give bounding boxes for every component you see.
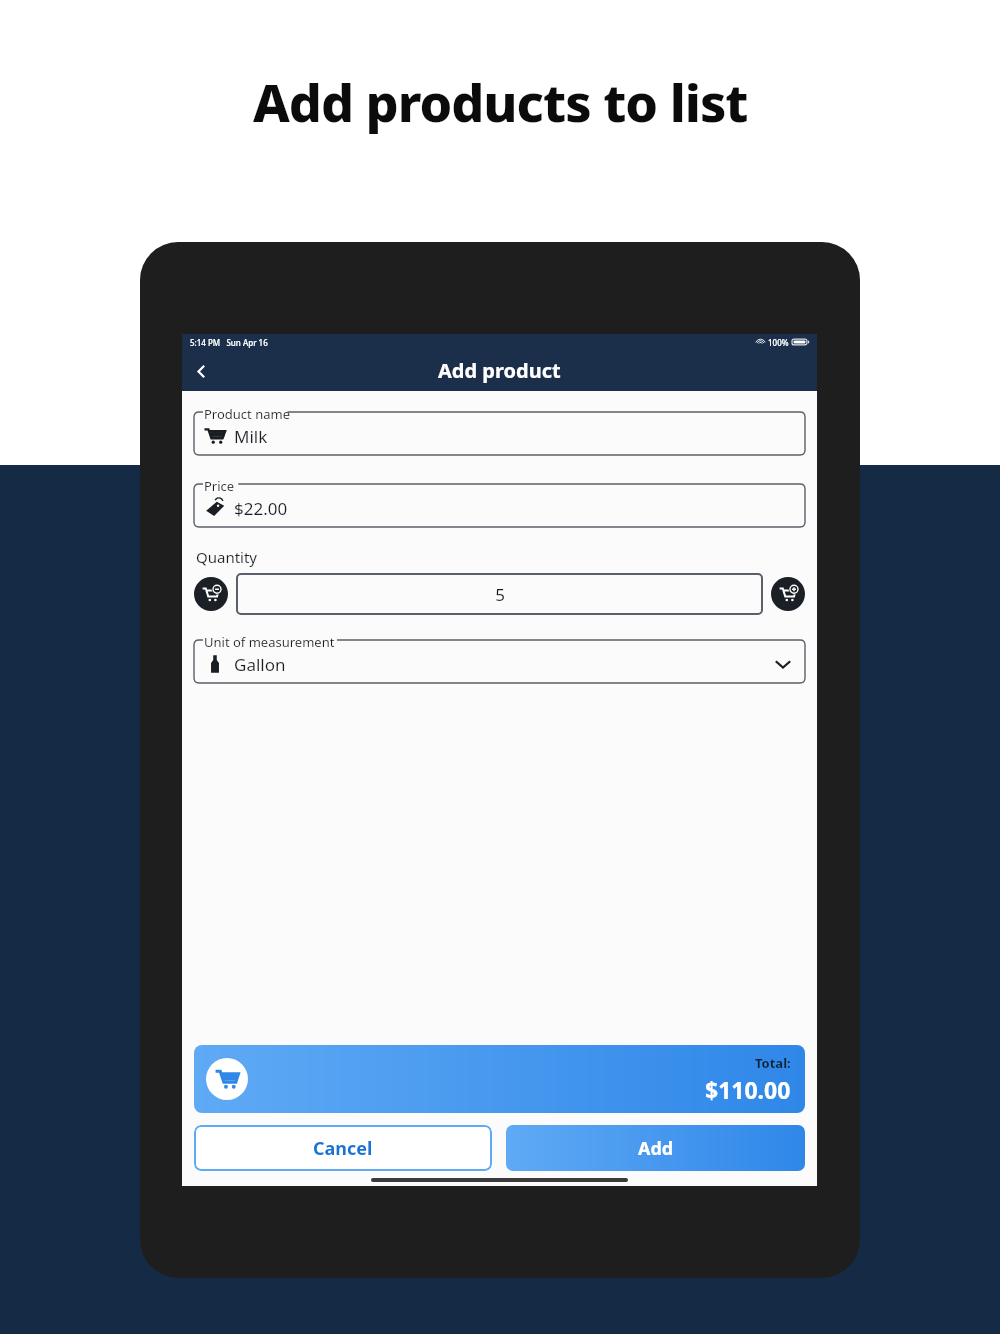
button[interactable]: Increase quantity (771, 577, 805, 611)
button[interactable]: Unit of measurement (194, 633, 805, 683)
staticText: $110.00 (705, 1074, 791, 1105)
button[interactable]: Add (506, 1125, 805, 1171)
staticText: 5 (495, 583, 505, 606)
staticText: Cancel (313, 1136, 373, 1161)
button[interactable]: Back (182, 352, 220, 390)
staticText: Unit of measurement (204, 633, 335, 651)
staticText: Add products to list (253, 66, 748, 137)
staticText: Add (638, 1136, 674, 1161)
staticText: Quantity (196, 547, 258, 567)
button[interactable]: Cancel (194, 1125, 492, 1171)
staticText: Total: (755, 1054, 791, 1072)
staticText: Add product (438, 357, 561, 384)
staticText: 5:14 PM Sun Apr 16 (190, 337, 268, 348)
button[interactable]: Total: (194, 1045, 805, 1113)
button[interactable]: Decrease quantity (194, 577, 228, 611)
button[interactable]: Price (194, 477, 805, 527)
staticText: Product name (204, 405, 290, 423)
button[interactable]: 5 (236, 573, 763, 615)
staticText: $22.00 (234, 497, 288, 520)
staticText: Price (204, 477, 235, 495)
button[interactable]: Product name (194, 405, 805, 455)
staticText: 100% (768, 337, 789, 348)
staticText: Gallon (234, 653, 286, 676)
staticText: Milk (234, 425, 268, 448)
